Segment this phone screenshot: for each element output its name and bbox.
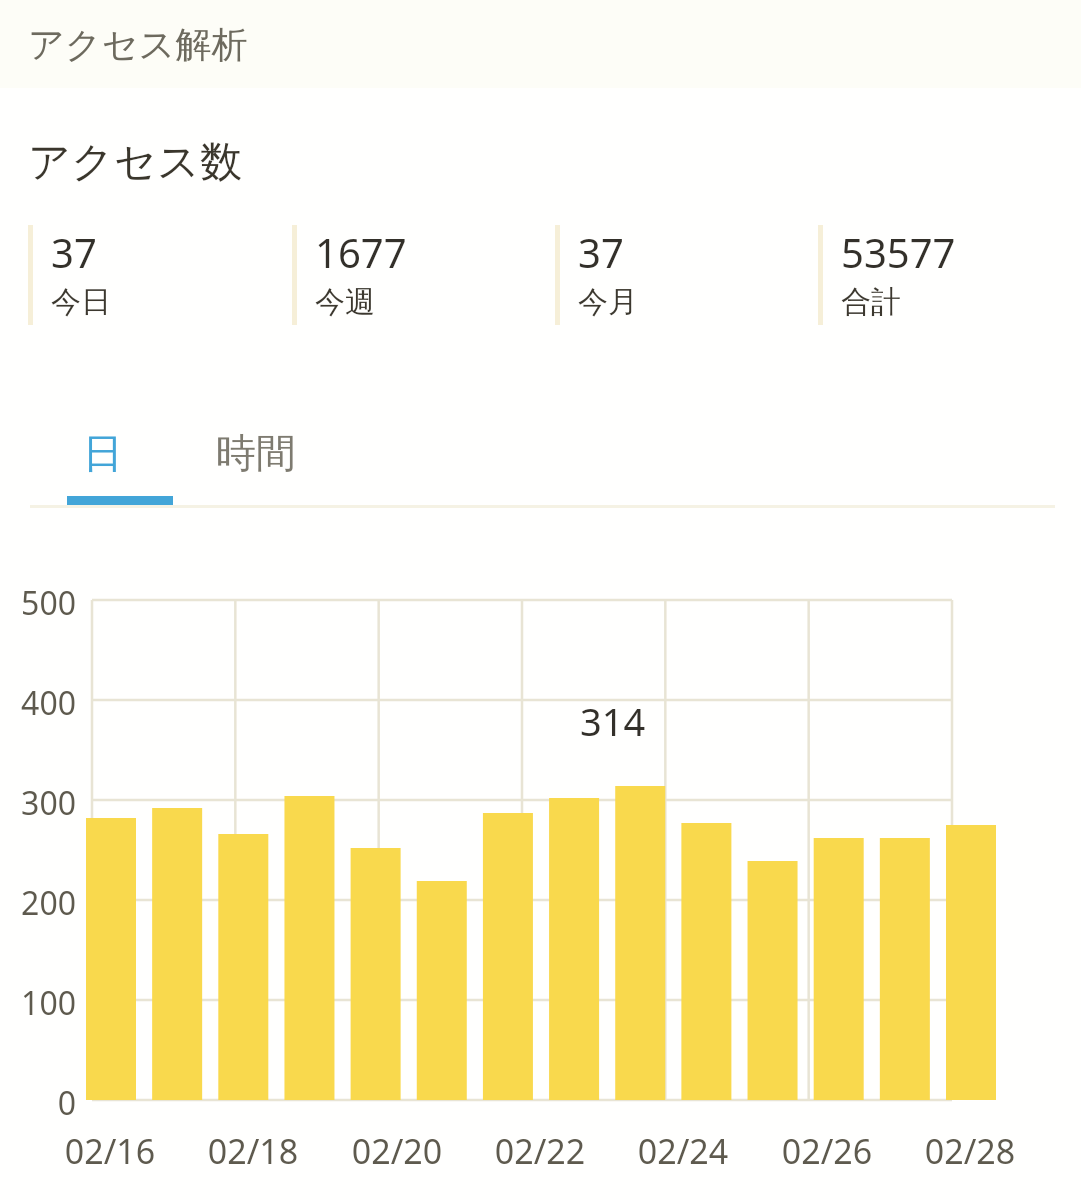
staticText: アクセス解析 <box>28 22 248 67</box>
staticText: 02/24 <box>608 1128 758 1174</box>
staticText: 37 <box>578 225 624 279</box>
staticText: 1677 <box>315 225 407 279</box>
other: 日別アクセス数グラフ <box>0 570 1081 1150</box>
button[interactable]: 1677 <box>292 225 555 325</box>
staticText: 53577 <box>841 225 956 279</box>
button[interactable]: 日 <box>30 401 176 505</box>
staticText: 02/28 <box>895 1128 1045 1174</box>
staticText: 02/18 <box>178 1128 328 1174</box>
staticText: 500 <box>0 581 76 625</box>
button[interactable]: 53577 <box>818 225 1081 325</box>
button[interactable]: 時間 <box>176 401 336 505</box>
staticText: 02/26 <box>752 1128 902 1174</box>
button[interactable]: 37 <box>28 225 292 325</box>
staticText: 37 <box>51 225 97 279</box>
staticText: 314 <box>580 695 646 747</box>
staticText: 日 <box>83 428 123 478</box>
staticText: 200 <box>0 881 76 925</box>
staticText: 02/22 <box>465 1128 615 1174</box>
staticText: 100 <box>0 981 76 1025</box>
staticText: アクセス数 <box>28 136 242 189</box>
staticText: 今月 <box>578 283 638 321</box>
staticText: 時間 <box>216 428 296 478</box>
staticText: 02/16 <box>35 1128 185 1174</box>
staticText: 今日 <box>51 283 111 321</box>
staticText: 300 <box>0 781 76 825</box>
staticText: 02/20 <box>322 1128 472 1174</box>
staticText: 400 <box>0 681 76 725</box>
staticText: 今週 <box>315 283 375 321</box>
button[interactable]: 37 <box>555 225 818 325</box>
staticText: 0 <box>0 1081 76 1125</box>
staticText: 合計 <box>841 283 901 321</box>
